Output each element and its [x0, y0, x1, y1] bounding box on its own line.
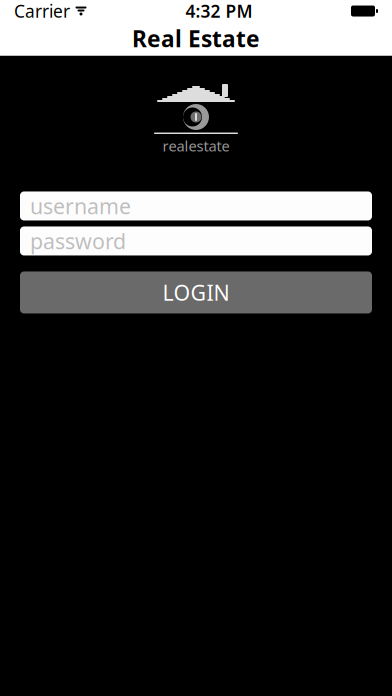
button[interactable]: username [20, 191, 372, 220]
staticText: username [30, 192, 131, 220]
staticText: 4:32 PM [185, 0, 252, 22]
staticText: Carrier [14, 0, 70, 22]
button[interactable]: password [20, 226, 372, 255]
button[interactable]: LOGIN [20, 271, 372, 313]
staticText: Real Estate [132, 23, 260, 53]
staticText: password [30, 227, 126, 255]
staticText: LOGIN [162, 278, 229, 307]
staticText: realestate [162, 136, 229, 155]
